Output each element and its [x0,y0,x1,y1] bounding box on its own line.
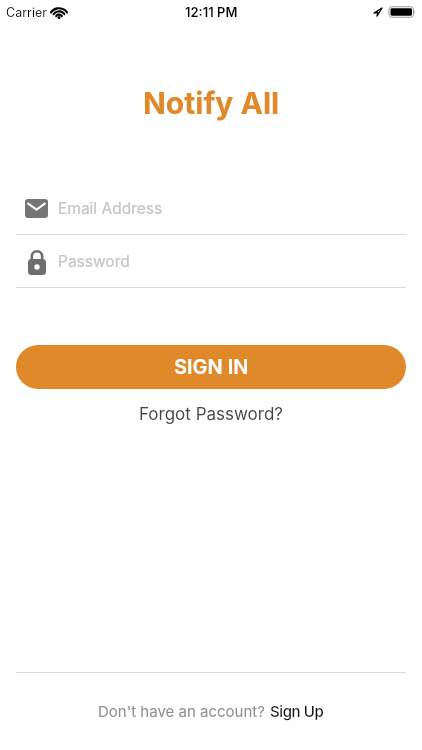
staticText: Carrier [6,5,47,20]
staticText: Password [58,252,130,271]
staticText: 12:11 PM [185,4,238,20]
staticText: Forgot Password? [139,404,284,425]
staticText: Email Address [58,199,163,218]
staticText: Notify All [143,85,280,121]
staticText: Sign Up [270,702,324,720]
staticText: Don't have an account? [98,702,270,720]
staticText: SIGN IN [174,355,249,379]
button[interactable]: SIGN IN [16,345,406,389]
button[interactable]: Password [0,235,422,287]
button[interactable]: Email Address [0,182,422,234]
button[interactable]: Don't have an account? [0,702,422,720]
button[interactable]: Forgot Password? [139,404,284,425]
